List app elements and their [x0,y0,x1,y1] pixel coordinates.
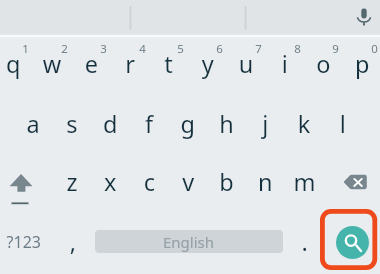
staticText: o [316,48,331,80]
staticText: 2 [61,41,68,57]
staticText: n [258,166,273,198]
staticText: 0 [371,41,378,57]
button[interactable]: f [129,95,168,153]
button[interactable]: h [207,95,246,153]
staticText: s [66,107,78,139]
button[interactable]: Backspace [323,153,380,211]
staticText: ?123 [6,231,41,253]
staticText: 6 [216,41,223,57]
button[interactable]: v [168,153,207,211]
staticText: b [219,166,234,198]
staticText: m [294,166,316,198]
staticText: q [6,48,21,80]
staticText: z [66,166,78,198]
button[interactable]: b [207,153,246,211]
staticText: k [298,107,311,139]
button[interactable]: p [343,37,380,95]
staticText: g [180,107,195,139]
button[interactable]: u [226,37,265,95]
button[interactable]: ?123 [0,211,48,269]
button[interactable]: k [285,95,324,153]
button[interactable]: Search [336,226,369,259]
button[interactable]: o [304,37,343,95]
staticText: u [238,48,253,80]
button[interactable]: q [0,37,33,95]
staticText: 8 [294,41,301,57]
staticText: i [281,48,288,80]
staticText: w [43,48,62,80]
button[interactable]: Shift [0,153,53,211]
staticText: x [104,166,117,198]
button[interactable]: Voice input [348,2,380,34]
staticText: y [202,48,214,80]
button[interactable]: n [246,153,285,211]
button[interactable]: x [91,153,130,211]
staticText: l [339,107,346,139]
button[interactable]: s [52,95,91,153]
staticText: a [26,107,40,139]
staticText: h [219,107,234,139]
button[interactable]: t [149,37,188,95]
button[interactable]: w [33,37,72,95]
staticText: 9 [332,41,339,57]
staticText: d [103,107,118,139]
staticText: p [355,48,370,80]
button[interactable]: g [168,95,207,153]
staticText: t [164,48,173,80]
button[interactable]: j [246,95,285,153]
staticText: e [84,48,98,80]
staticText: , [69,226,76,258]
staticText: 7 [255,41,262,57]
staticText: r [125,48,135,80]
button[interactable]: y [188,37,227,95]
button[interactable]: . [285,211,324,269]
button[interactable]: r [110,37,149,95]
button[interactable]: , [53,211,92,269]
button[interactable]: m [285,153,324,211]
staticText: f [144,107,153,139]
staticText: 1 [22,41,29,57]
button[interactable]: English [95,211,283,269]
staticText: 4 [139,41,146,57]
button[interactable]: c [129,153,168,211]
staticText: 5 [177,41,184,57]
staticText: . [301,226,308,258]
staticText: v [182,166,194,198]
staticText: English [163,232,215,252]
button[interactable]: z [52,153,91,211]
button[interactable]: e [71,37,110,95]
button[interactable]: d [91,95,130,153]
staticText: j [262,107,269,139]
button[interactable]: l [323,95,362,153]
button[interactable]: a [13,95,52,153]
staticText: c [143,166,155,198]
staticText: 3 [100,41,107,57]
button[interactable]: i [265,37,304,95]
